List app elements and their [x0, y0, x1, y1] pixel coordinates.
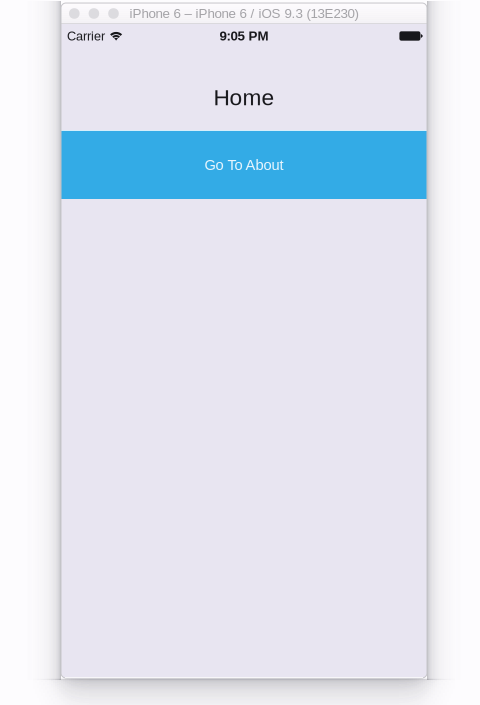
button[interactable]: Close window — [69, 8, 80, 19]
staticText: Home — [213, 85, 274, 110]
staticText: Carrier — [67, 29, 105, 43]
staticText: Go To About — [204, 157, 283, 173]
button[interactable]: Go To About — [61, 130, 427, 199]
button[interactable]: Minimize window — [89, 8, 99, 19]
staticText: 9:05 PM — [219, 29, 268, 43]
button[interactable]: Zoom window — [108, 8, 119, 19]
staticText: iPhone 6 – iPhone 6 / iOS 9.3 (13E230) — [129, 6, 358, 21]
